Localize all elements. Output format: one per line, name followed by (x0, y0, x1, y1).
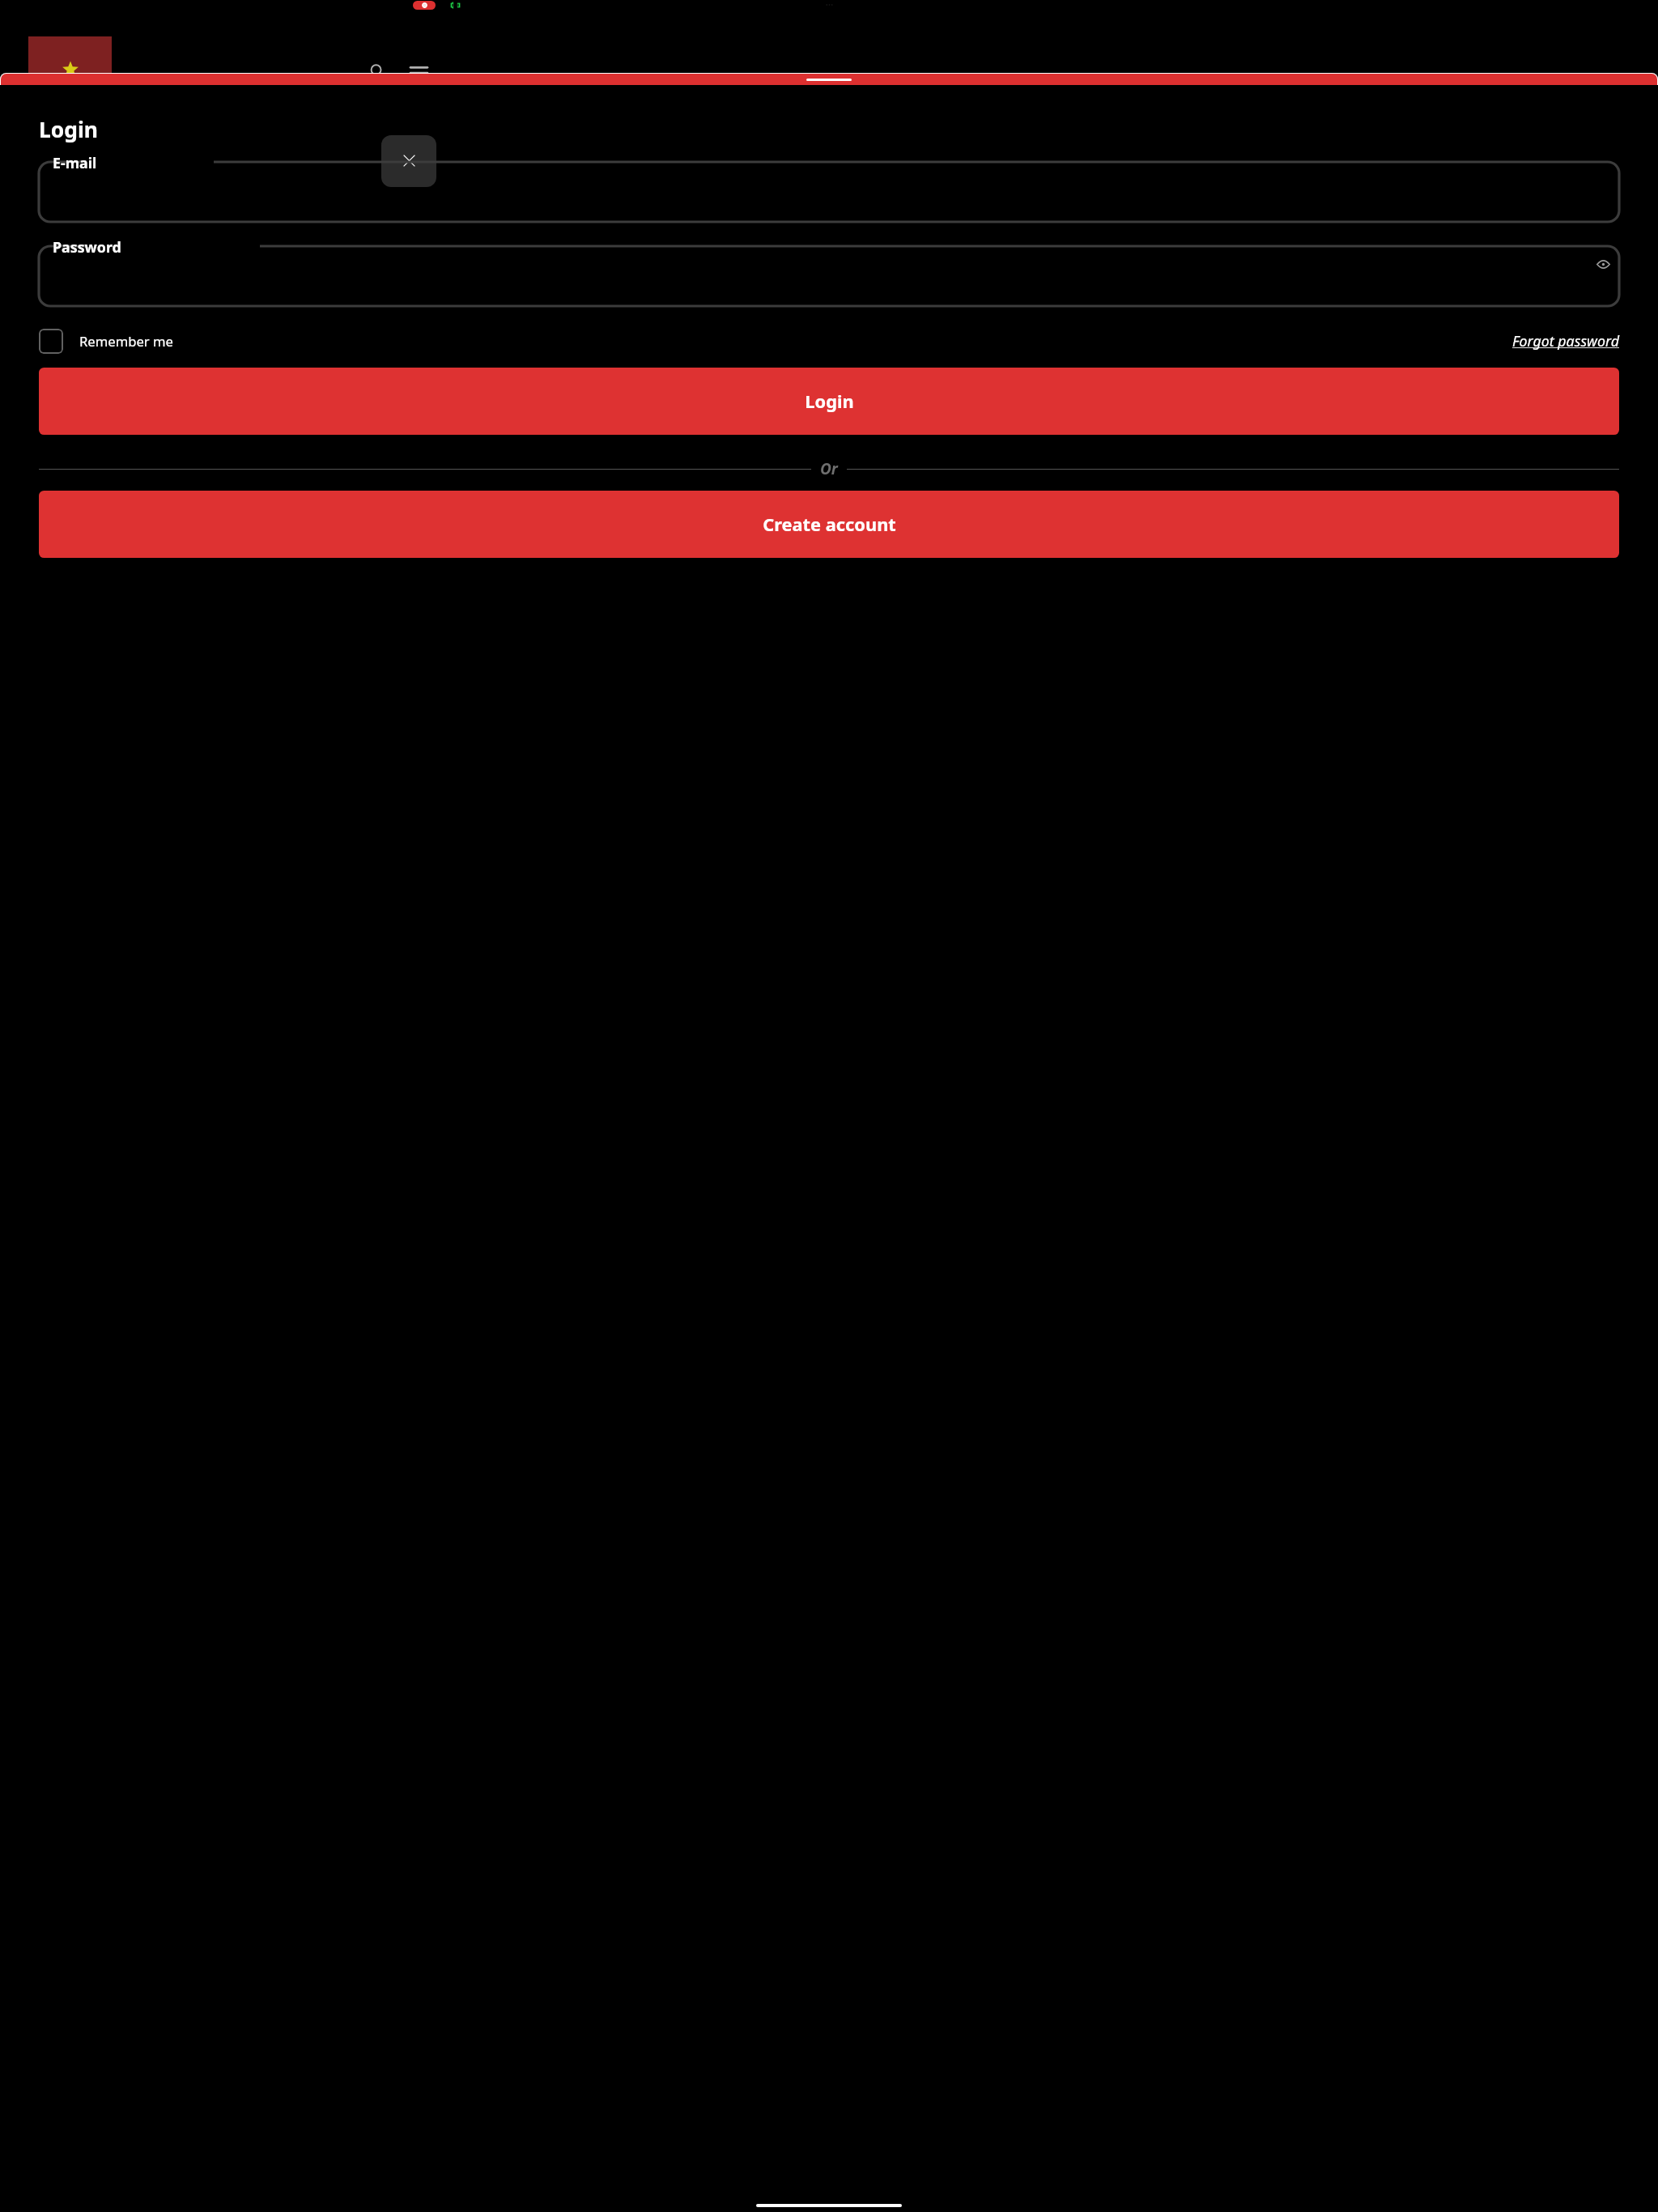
button[interactable]: Show password (1592, 253, 1613, 274)
staticText: Create account (763, 513, 896, 537)
staticText: Forgot password (1512, 331, 1619, 351)
other: Screen recording (413, 1, 436, 10)
button[interactable]: Close (381, 135, 436, 187)
button[interactable]: Login (39, 368, 1619, 435)
button[interactable]: Remember me (39, 329, 174, 354)
button[interactable]: Language: Vietnamese (28, 36, 112, 86)
button[interactable]: Forgot password (1512, 331, 1619, 351)
button[interactable]: Create account (39, 491, 1619, 558)
staticText: Remember me (79, 332, 174, 351)
staticText: Login (39, 115, 99, 144)
button[interactable]: Search (367, 61, 388, 82)
button[interactable]: Menu (406, 63, 431, 82)
staticText: Or (820, 458, 838, 479)
staticText: Password (53, 237, 121, 257)
staticText: Login (805, 389, 854, 414)
button[interactable]: E-mail (39, 162, 1619, 222)
button[interactable]: Password (39, 246, 1619, 306)
staticText: E-mail (53, 153, 97, 172)
